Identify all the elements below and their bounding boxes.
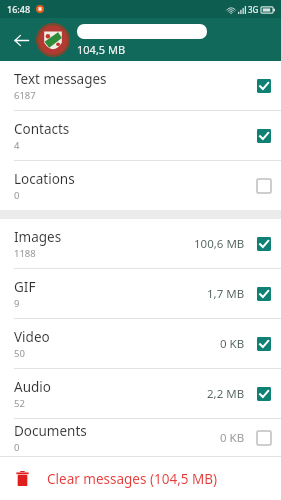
button[interactable]: Back <box>8 27 34 53</box>
staticText: 16:48 <box>7 3 31 15</box>
staticText: 0 KB <box>220 430 245 446</box>
button[interactable]: Audio <box>0 369 281 418</box>
staticText: Locations <box>14 170 75 188</box>
staticText: 3G <box>248 4 259 15</box>
button[interactable]: Images <box>0 219 281 268</box>
staticText: 9 <box>14 297 20 310</box>
button[interactable]: GIF <box>0 269 281 318</box>
button[interactable]: Locations <box>0 161 281 210</box>
staticText: 0 KB <box>220 336 245 352</box>
staticText: Clear messages (104,5 MB) <box>47 470 218 488</box>
staticText: GIF <box>14 278 36 296</box>
staticText: 6187 <box>14 89 36 102</box>
staticText: Video <box>14 328 50 346</box>
staticText: 0 <box>14 189 20 202</box>
staticText: Text messages <box>14 70 107 88</box>
staticText: 4 <box>14 139 20 152</box>
button[interactable]: Contacts <box>0 111 281 160</box>
staticText: 104,5 MB <box>77 42 126 57</box>
button[interactable]: Clear messages (104,5 MB) <box>0 457 281 500</box>
staticText: 1,7 MB <box>207 286 245 302</box>
staticText: Contacts <box>14 120 70 138</box>
staticText: 52 <box>14 397 25 410</box>
staticText: 0 <box>14 441 20 454</box>
staticText: 50 <box>14 347 25 360</box>
button[interactable]: Text messages <box>0 61 281 110</box>
staticText: 2,2 MB <box>207 386 245 402</box>
staticText: Audio <box>14 378 51 396</box>
button[interactable]: Documents <box>0 419 281 456</box>
staticText: Images <box>14 228 62 246</box>
staticText: Documents <box>14 422 87 440</box>
staticText: 100,6 MB <box>194 236 245 252</box>
staticText: 1188 <box>14 247 36 260</box>
button[interactable]: Video <box>0 319 281 368</box>
